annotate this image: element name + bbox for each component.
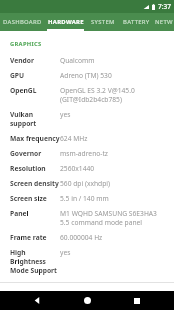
- staticText: 60.000004 Hz: [60, 233, 168, 242]
- staticText: M1 WQHD SAMSUNG S6E3HA3 5.5 command mode…: [60, 209, 168, 227]
- staticText: DASHBOARD: [3, 18, 42, 26]
- button[interactable]: Home: [74, 291, 100, 310]
- button[interactable]: BATTERY: [119, 13, 154, 31]
- staticText: msm-adreno-tz: [60, 149, 168, 158]
- staticText: 624 MHz: [60, 134, 168, 143]
- button[interactable]: Panel: [0, 203, 174, 227]
- button[interactable]: GPU: [0, 65, 174, 80]
- staticText: Vulkan support: [10, 110, 60, 128]
- button[interactable]: Vendor: [0, 50, 174, 65]
- button[interactable]: Back: [24, 291, 50, 310]
- staticText: BATTERY: [123, 18, 150, 26]
- staticText: GPU: [10, 71, 60, 80]
- button[interactable]: Governor: [0, 143, 174, 158]
- staticText: SYSTEM: [91, 18, 115, 26]
- staticText: Governor: [10, 149, 60, 158]
- staticText: Screen size: [10, 194, 60, 203]
- staticText: Qualcomm: [60, 56, 168, 65]
- staticText: HARDWARE: [48, 18, 84, 26]
- button[interactable]: NETW: [154, 13, 174, 31]
- staticText: GRAPHICS: [10, 40, 42, 48]
- staticText: Frame rate: [10, 233, 60, 242]
- staticText: OpenGL ES 3.2 V@145.0 (GIT@Idb2b4cb785): [60, 86, 168, 104]
- staticText: OpenGL: [10, 86, 60, 95]
- staticText: Resolution: [10, 164, 60, 173]
- staticText: 2560x1440: [60, 164, 168, 173]
- staticText: High Brightness Mode Support: [10, 248, 60, 275]
- staticText: 5.5 in / 140 mm: [60, 194, 168, 203]
- staticText: yes: [60, 248, 168, 257]
- button[interactable]: Screen size: [0, 188, 174, 203]
- button[interactable]: Frame rate: [0, 227, 174, 242]
- button[interactable]: Screen density: [0, 173, 174, 188]
- button[interactable]: Recents: [124, 291, 150, 310]
- staticText: Vendor: [10, 56, 60, 65]
- staticText: NETW: [155, 18, 173, 26]
- button[interactable]: DASHBOARD: [0, 13, 45, 31]
- staticText: 560 dpi (xxhdpi): [60, 179, 168, 188]
- button[interactable]: High Brightness Mode Support: [0, 242, 174, 275]
- button[interactable]: Resolution: [0, 158, 174, 173]
- staticText: yes: [60, 110, 168, 119]
- button[interactable]: OpenGL: [0, 80, 174, 104]
- staticText: Panel: [10, 209, 60, 218]
- staticText: Screen density: [10, 179, 60, 188]
- staticText: 7:37: [158, 2, 171, 11]
- staticText: Adreno (TM) 530: [60, 71, 168, 80]
- button[interactable]: Max frequency: [0, 128, 174, 143]
- staticText: Max frequency: [10, 134, 60, 143]
- button[interactable]: Vulkan support: [0, 104, 174, 128]
- button[interactable]: SYSTEM: [86, 13, 119, 31]
- button[interactable]: HARDWARE: [45, 13, 86, 31]
